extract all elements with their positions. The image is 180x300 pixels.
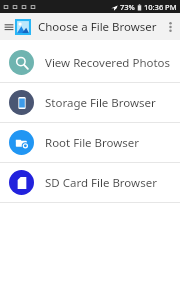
- staticText: Choose a File Browser: [38, 19, 157, 35]
- button[interactable]: Open navigation menu: [2, 16, 33, 38]
- staticText: View Recovered Photos: [45, 55, 171, 71]
- staticText: SD Card File Browser: [45, 175, 157, 191]
- staticText: Storage File Browser: [45, 95, 156, 111]
- button[interactable]: Root File Browser: [0, 123, 180, 162]
- button[interactable]: SD Card File Browser: [0, 163, 180, 202]
- staticText: Root File Browser: [45, 135, 140, 151]
- staticText: 73%: [120, 2, 135, 12]
- button[interactable]: Storage File Browser: [0, 83, 180, 122]
- button[interactable]: View Recovered Photos: [0, 43, 180, 82]
- staticText: 10:36 PM: [144, 2, 177, 12]
- button[interactable]: More options: [162, 16, 178, 38]
